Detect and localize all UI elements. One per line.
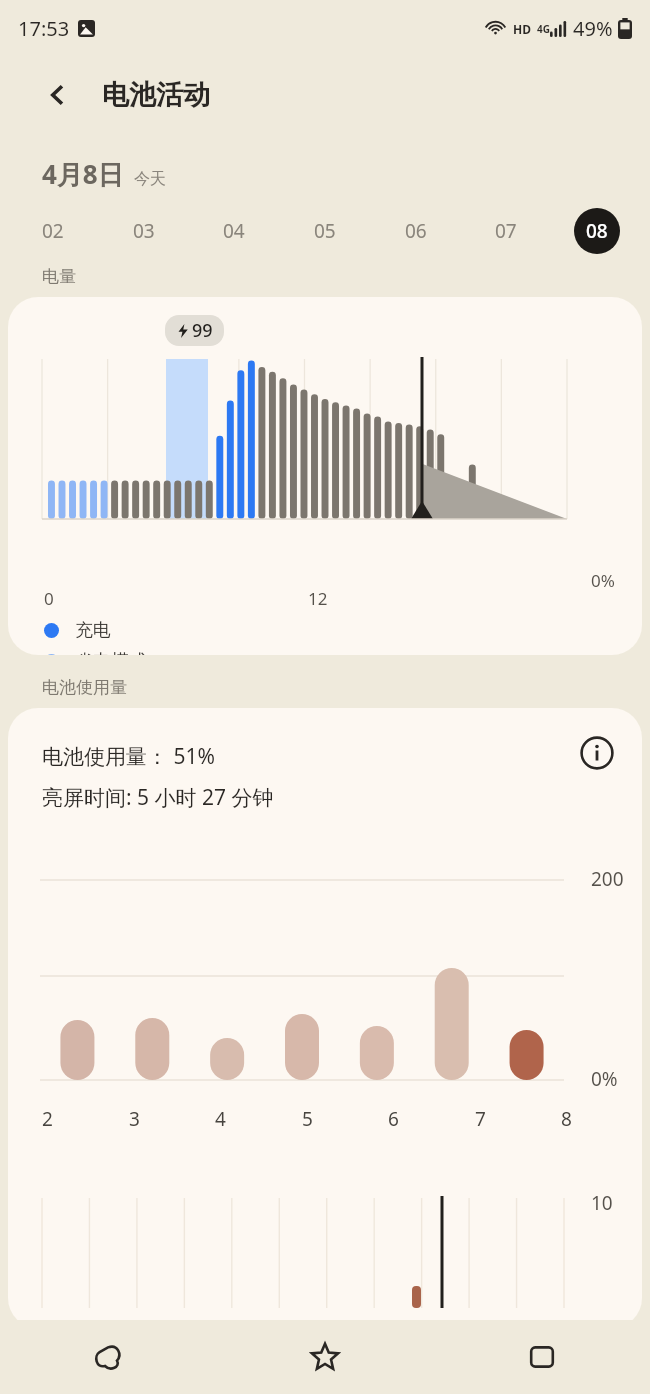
button[interactable]: 03 bbox=[121, 208, 167, 254]
staticText: 电池使用量 bbox=[42, 677, 127, 698]
button[interactable]: 电池使用量： 51% bbox=[8, 708, 642, 1328]
button[interactable]: Info bbox=[574, 730, 620, 776]
button[interactable]: 99 bbox=[8, 297, 642, 655]
staticText: 05 bbox=[314, 218, 336, 244]
staticText: 8 bbox=[561, 1106, 572, 1132]
button[interactable]: 06 bbox=[393, 208, 439, 254]
staticText: 电池活动 bbox=[102, 78, 210, 112]
staticText: HD bbox=[513, 21, 531, 37]
button[interactable]: 02 bbox=[30, 208, 76, 254]
button[interactable]: 07 bbox=[483, 208, 529, 254]
staticText: 7 bbox=[475, 1106, 486, 1132]
staticText: 今天 bbox=[134, 169, 166, 189]
button[interactable]: 08 bbox=[574, 208, 620, 254]
button[interactable]: Back bbox=[36, 73, 80, 117]
staticText: 200 bbox=[591, 866, 624, 892]
button[interactable]: Favorites bbox=[216, 1320, 433, 1394]
staticText: 电池使用量： 51% bbox=[42, 742, 215, 771]
staticText: 0 bbox=[44, 587, 54, 610]
staticText: 06 bbox=[405, 218, 427, 244]
staticText: 亮屏时间: 5 小时 27 分钟 bbox=[42, 783, 274, 812]
staticText: 6 bbox=[388, 1106, 399, 1132]
staticText: 17:53 bbox=[18, 15, 70, 42]
staticText: 充电 bbox=[75, 619, 111, 642]
button[interactable]: Recents bbox=[433, 1320, 650, 1394]
staticText: 02 bbox=[42, 218, 64, 244]
staticText: 2 bbox=[42, 1106, 53, 1132]
staticText: 4月8日 bbox=[42, 156, 124, 192]
staticText: 0% bbox=[591, 569, 615, 592]
staticText: 4 bbox=[215, 1106, 226, 1132]
staticText: 12 bbox=[308, 587, 328, 610]
staticText: 03 bbox=[133, 218, 155, 244]
staticText: 省电模式 bbox=[75, 650, 147, 655]
staticText: 99 bbox=[192, 318, 213, 343]
staticText: 5 bbox=[302, 1106, 313, 1132]
staticText: 3 bbox=[129, 1106, 140, 1132]
staticText: 49% bbox=[573, 15, 613, 42]
staticText: 4G bbox=[537, 22, 550, 36]
button[interactable]: 04 bbox=[211, 208, 257, 254]
staticText: 电量 bbox=[42, 266, 76, 287]
button[interactable]: Home bbox=[0, 1320, 216, 1394]
button[interactable]: 05 bbox=[302, 208, 348, 254]
staticText: 10 bbox=[591, 1190, 613, 1216]
staticText: 04 bbox=[223, 218, 245, 244]
staticText: 07 bbox=[495, 218, 517, 244]
staticText: 0% bbox=[591, 1066, 618, 1092]
staticText: 08 bbox=[586, 218, 608, 244]
